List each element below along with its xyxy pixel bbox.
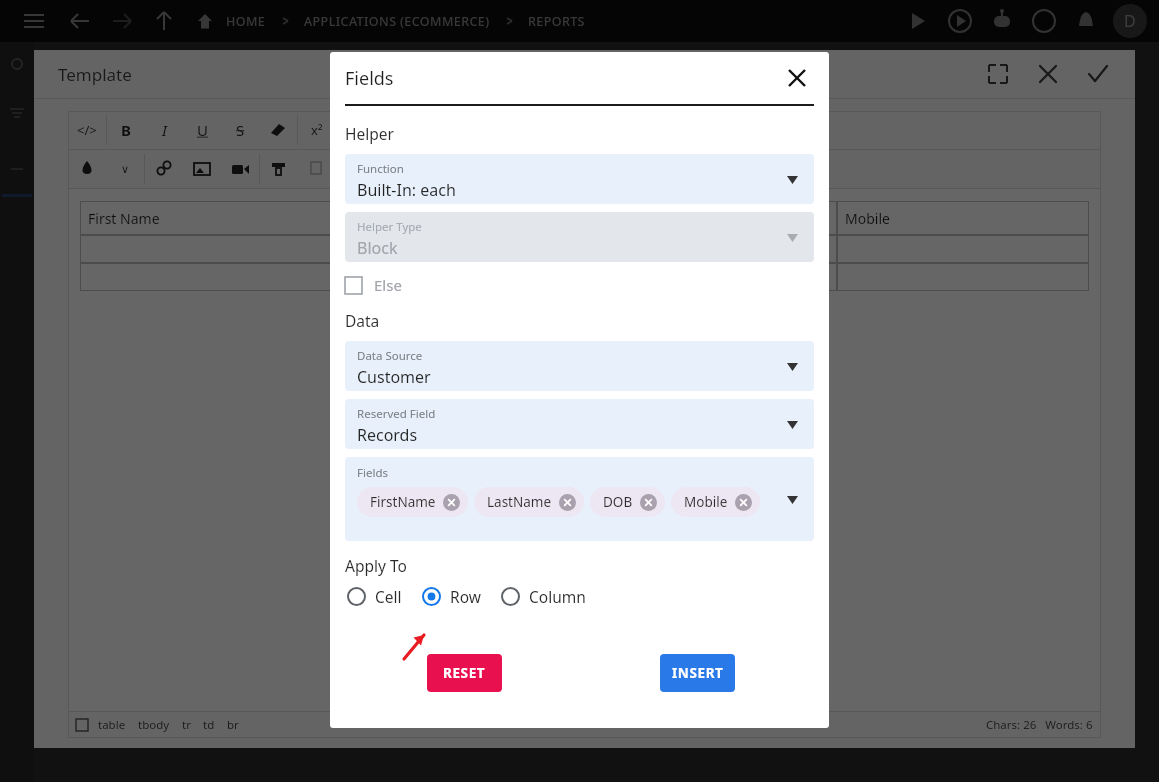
staticText: </> <box>77 121 97 139</box>
button[interactable]: DOB <box>590 487 665 517</box>
staticText: Block <box>357 237 398 259</box>
button[interactable]: Cut <box>336 150 374 188</box>
button[interactable]: Save <box>1085 61 1111 87</box>
button[interactable]: Remove DOB <box>640 494 657 511</box>
staticText: Apply To <box>345 555 407 576</box>
button[interactable]: Close <box>1035 61 1061 87</box>
button[interactable]: B <box>107 111 145 149</box>
staticText: Template <box>58 63 132 86</box>
staticText: Mobile <box>845 209 890 228</box>
staticText: Built-In: each <box>357 179 456 201</box>
button[interactable]: ∨ <box>106 150 144 188</box>
staticText: Else <box>374 275 402 295</box>
staticText: Function <box>357 161 404 177</box>
staticText: Mobile <box>684 493 728 511</box>
staticText: DOB <box>593 209 624 228</box>
button[interactable]: Video <box>221 150 259 188</box>
staticText: td <box>203 717 215 733</box>
button[interactable]: RESET <box>427 654 502 692</box>
button[interactable]: APPLICATIONS (ECOMMERCE) <box>298 13 496 30</box>
staticText: br <box>227 717 239 733</box>
button[interactable]: Forward <box>110 9 134 33</box>
button[interactable]: Remove LastName <box>559 494 576 511</box>
staticText: Helper Type <box>357 219 422 235</box>
staticText: INSERT <box>672 664 724 682</box>
button[interactable]: Helper Type <box>345 212 814 262</box>
button[interactable]: Column <box>499 580 588 613</box>
button[interactable]: Fullscreen <box>985 61 1011 87</box>
staticText: LastName <box>487 493 552 511</box>
button[interactable]: I <box>145 111 183 149</box>
staticText: Data Source <box>357 348 423 364</box>
button[interactable]: Mobile <box>671 487 760 517</box>
button[interactable]: Account <box>1113 4 1147 38</box>
button[interactable]: x² <box>298 111 336 149</box>
button[interactable]: Assistant <box>989 8 1015 34</box>
staticText: DOB <box>603 493 633 511</box>
button[interactable]: LastName <box>474 487 584 517</box>
staticText: D <box>1124 10 1136 32</box>
button[interactable]: Link <box>145 150 183 188</box>
staticText: B <box>121 120 131 140</box>
staticText: REPORTS <box>528 13 585 30</box>
button[interactable]: S <box>221 111 259 149</box>
staticText: FirstName <box>370 493 436 511</box>
button[interactable]: Else <box>345 270 402 300</box>
button[interactable]: Delete <box>629 150 667 188</box>
staticText: U <box>197 120 208 140</box>
button[interactable]: Preview <box>947 8 973 34</box>
button[interactable]: Image <box>183 150 221 188</box>
button[interactable]: Help <box>1031 8 1057 34</box>
button[interactable]: Notifications <box>1073 8 1099 34</box>
button[interactable]: Function <box>345 154 814 204</box>
button[interactable]: Eraser <box>259 111 297 149</box>
staticText: Helper <box>345 123 394 144</box>
staticText: tr <box>182 717 191 733</box>
button[interactable]: INSERT <box>660 654 735 692</box>
button[interactable]: Up <box>152 9 176 33</box>
staticText: HOME <box>226 13 266 30</box>
staticText: Data <box>345 310 380 331</box>
button[interactable]: Run <box>905 8 931 34</box>
staticText: Records <box>357 424 418 446</box>
button[interactable]: Fields <box>345 457 814 541</box>
staticText: Chars: 26 Words: 6 <box>986 717 1093 733</box>
button[interactable]: Copy <box>298 150 336 188</box>
button[interactable]: Close dialog <box>781 62 813 94</box>
button[interactable]: Cell <box>345 580 404 613</box>
button[interactable]: U <box>183 111 221 149</box>
staticText: tbody <box>138 717 170 733</box>
staticText: x² <box>311 121 323 139</box>
button[interactable]: Data Source <box>345 341 814 391</box>
staticText: Fields <box>345 66 394 91</box>
staticText: Customer <box>357 366 431 388</box>
button[interactable]: REPORTS <box>522 13 591 30</box>
staticText: ∨ <box>121 163 130 176</box>
button[interactable]: Row <box>420 580 483 613</box>
staticText: APPLICATIONS (ECOMMERCE) <box>304 13 490 30</box>
button[interactable]: Text color <box>68 150 106 188</box>
button[interactable]: Edit <box>591 150 629 188</box>
button[interactable]: Remove Mobile <box>735 494 752 511</box>
staticText: table <box>98 717 126 733</box>
button[interactable]: FirstName <box>357 487 468 517</box>
staticText: Last Name <box>341 209 412 228</box>
button[interactable]: Format painter <box>260 150 298 188</box>
staticText: First Name <box>88 209 160 228</box>
staticText: I <box>162 120 167 140</box>
staticText: Reserved Field <box>357 406 436 422</box>
staticText: RESET <box>443 664 486 682</box>
staticText: Cell <box>375 586 402 607</box>
button[interactable]: Remove FirstName <box>443 494 460 511</box>
button[interactable]: Menu <box>22 9 46 33</box>
staticText: Fields <box>357 465 388 481</box>
button[interactable]: Back <box>68 9 92 33</box>
staticText: Column <box>529 586 586 607</box>
button[interactable]: Reserved Field <box>345 399 814 449</box>
button[interactable]: </> <box>68 111 106 149</box>
button[interactable]: HOME <box>220 13 272 30</box>
